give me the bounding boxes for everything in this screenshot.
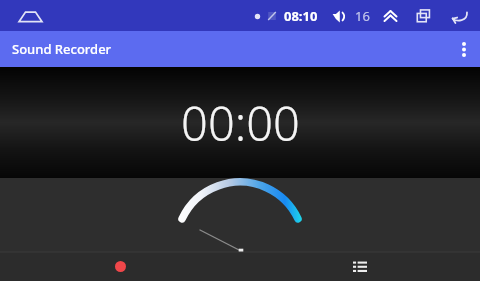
button[interactable]: Recording list [240,252,480,281]
button[interactable]: Back [446,3,472,29]
button[interactable]: Sound Recorder [0,31,480,67]
button[interactable]: More options [448,31,480,67]
button[interactable]: Expand status [378,4,402,28]
staticText: 00:00 [181,91,300,155]
staticText: 08:10 [284,7,318,25]
staticText: Sound Recorder [12,40,112,58]
staticText: 16 [355,7,370,25]
button[interactable]: Volume [328,5,350,27]
button[interactable]: Record [0,252,240,281]
button[interactable]: Recents [411,3,437,29]
button[interactable]: Home [10,1,50,31]
